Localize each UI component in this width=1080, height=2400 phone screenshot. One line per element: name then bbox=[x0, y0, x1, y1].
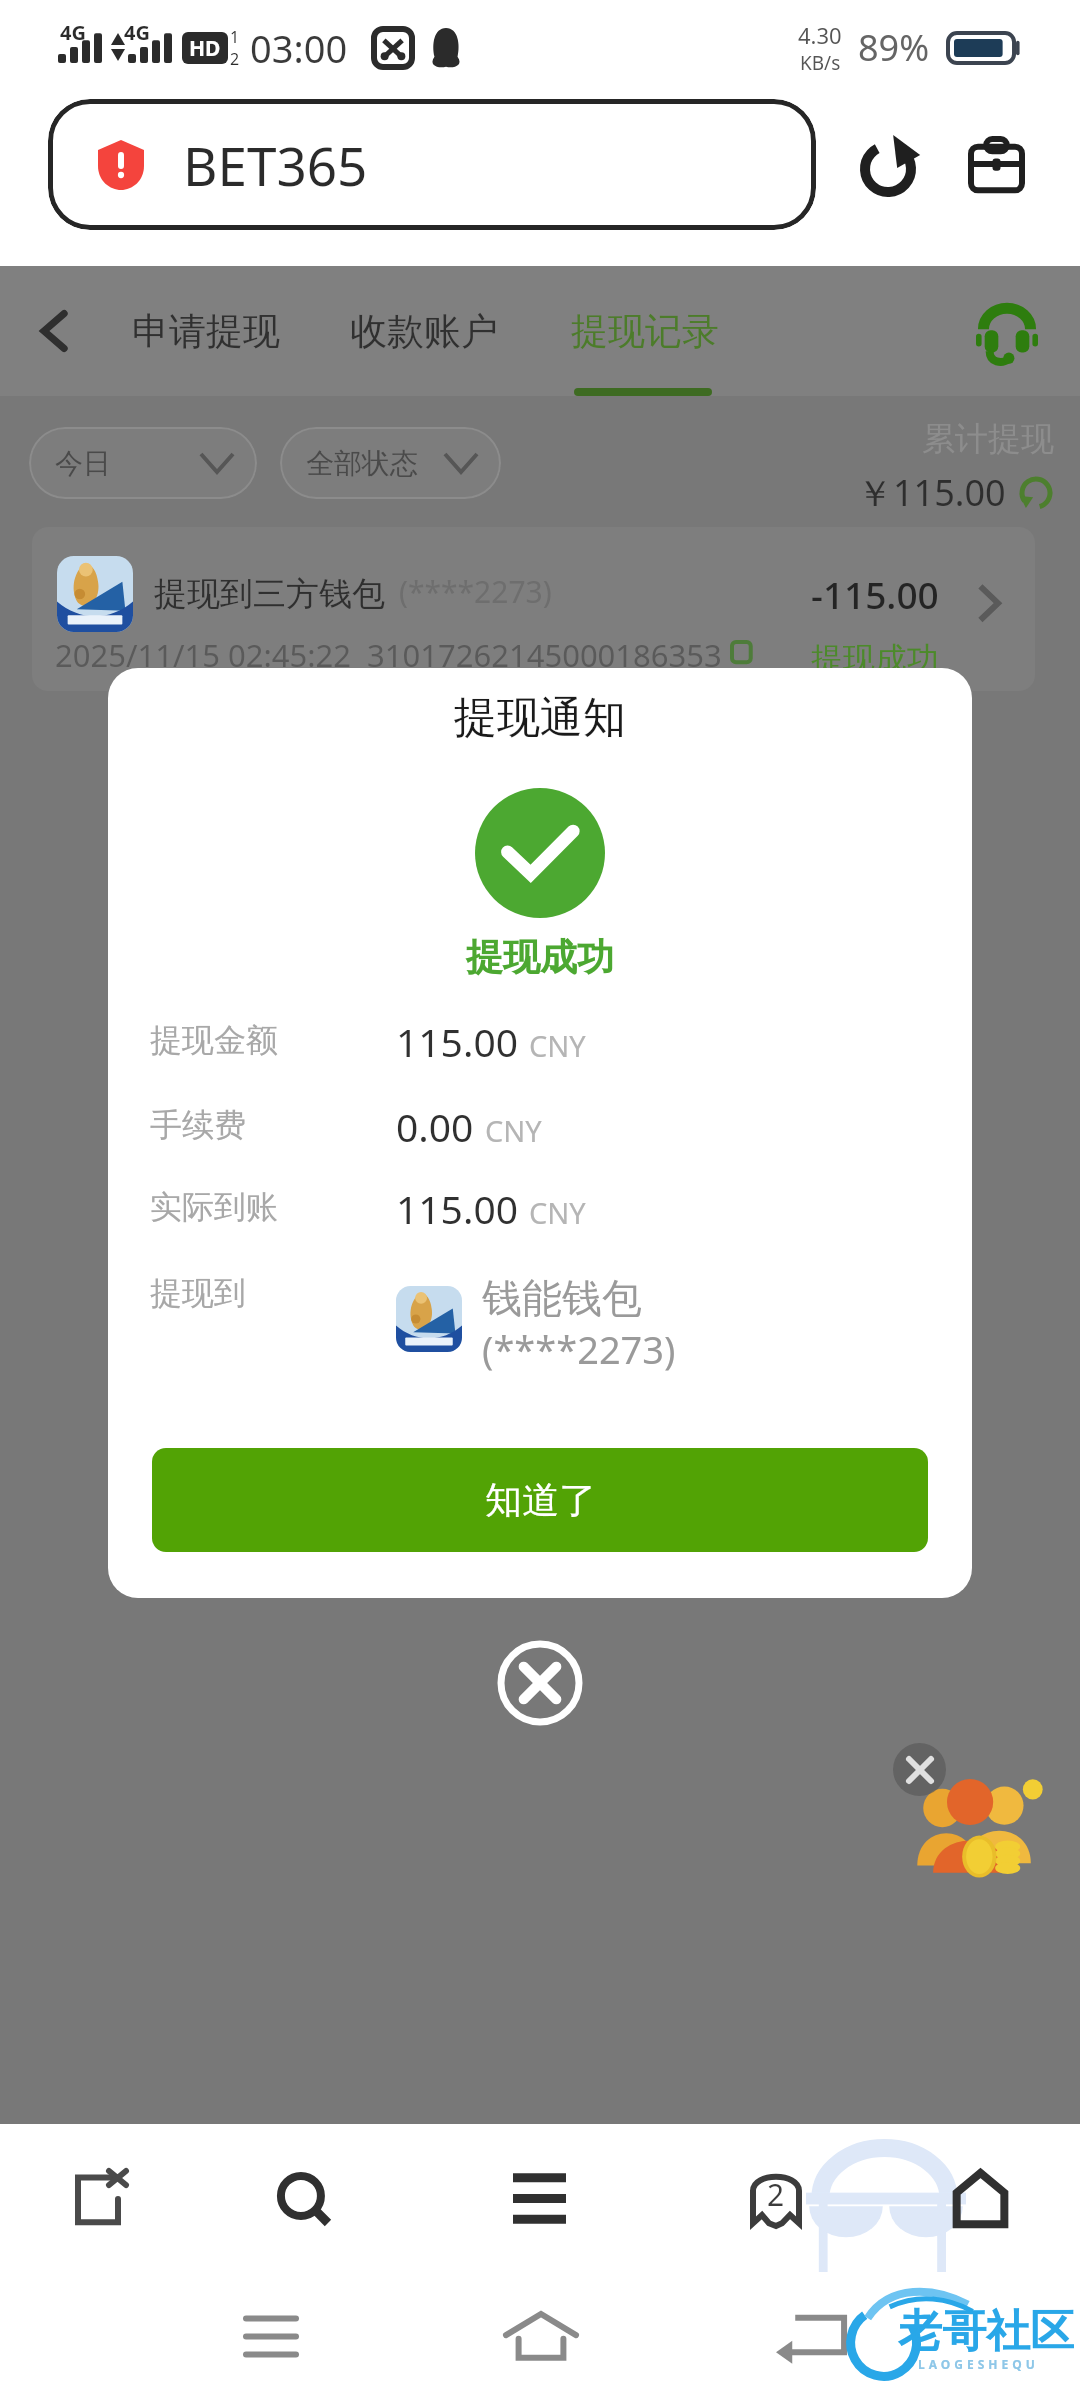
staticText: 89% bbox=[858, 23, 930, 72]
staticText: (****2273) bbox=[482, 1323, 676, 1375]
staticText: 全部状态 bbox=[306, 446, 418, 481]
staticText: 提现成功 bbox=[466, 934, 614, 981]
staticText: 提现成功 bbox=[811, 639, 939, 679]
staticText: 手续费 bbox=[150, 1105, 246, 1145]
staticText: 03:00 bbox=[250, 22, 348, 74]
button[interactable]: 知道了 bbox=[152, 1448, 928, 1552]
staticText: 115.00 bbox=[396, 1015, 518, 1068]
button[interactable]: 全部状态 bbox=[280, 427, 501, 499]
staticText: 今日 bbox=[55, 446, 111, 481]
button[interactable]: Search bbox=[231, 2124, 375, 2272]
staticText: 2025/11/15 02:45:22 31017262145000186353 bbox=[55, 634, 722, 676]
staticText: 提现通知 bbox=[454, 691, 626, 745]
staticText: 收款账户 bbox=[350, 308, 498, 355]
button[interactable]: 今日 bbox=[29, 427, 257, 499]
staticText: 提现记录 bbox=[571, 308, 719, 355]
staticText: 1 bbox=[230, 26, 240, 48]
button[interactable]: New tab bbox=[29, 2124, 173, 2272]
staticText: 提现金额 bbox=[150, 1020, 278, 1060]
staticText: 115.00 bbox=[396, 1182, 518, 1235]
staticText: CNY bbox=[485, 1111, 542, 1150]
staticText: -115.00 bbox=[811, 569, 939, 619]
staticText: HD bbox=[189, 34, 221, 63]
button[interactable]: Close bbox=[486, 1629, 594, 1737]
staticText: 申请提现 bbox=[132, 308, 280, 355]
button[interactable]: 提现到三方钱包 bbox=[32, 527, 1035, 691]
button[interactable]: Home bbox=[468, 2272, 614, 2400]
staticText: 2 bbox=[767, 2174, 785, 2215]
button[interactable]: Menu bbox=[467, 2124, 611, 2272]
staticText: 知道了 bbox=[485, 1477, 596, 1524]
staticText: 老哥社区 bbox=[898, 2304, 1074, 2359]
button[interactable]: Toolbox bbox=[948, 116, 1044, 212]
button[interactable]: Customer support bbox=[958, 286, 1056, 384]
button[interactable]: Home bbox=[908, 2124, 1052, 2272]
staticText: CNY bbox=[529, 1026, 586, 1065]
staticText: LAOGESHEQU bbox=[918, 2356, 1039, 2372]
staticText: CNY bbox=[529, 1193, 586, 1232]
staticText: 实际到账 bbox=[150, 1187, 278, 1227]
staticText: 累计提现 bbox=[922, 418, 1054, 460]
staticText: 提现到 bbox=[150, 1273, 396, 1313]
staticText: ￥115.00 bbox=[857, 468, 1006, 517]
staticText: (****2273) bbox=[399, 571, 552, 612]
staticText: 4.30 bbox=[798, 20, 842, 50]
button[interactable]: 申请提现 bbox=[116, 266, 296, 396]
staticText: 钱能钱包 bbox=[482, 1273, 642, 1323]
button[interactable]: Refresh bbox=[840, 118, 936, 214]
staticText: 4G bbox=[60, 19, 86, 46]
staticText: 4G bbox=[124, 19, 150, 46]
staticText: 2 bbox=[230, 48, 240, 70]
button[interactable]: Recents bbox=[198, 2272, 344, 2400]
staticText: 0.00 bbox=[396, 1100, 474, 1153]
button[interactable]: 提现记录 bbox=[555, 266, 735, 396]
staticText: 提现到三方钱包 bbox=[154, 573, 385, 615]
button[interactable]: Back bbox=[740, 2272, 886, 2400]
button[interactable]: 收款账户 bbox=[334, 266, 514, 396]
button[interactable]: Bookmarks bbox=[704, 2124, 848, 2272]
staticText: BET365 bbox=[183, 129, 368, 201]
button[interactable]: Dismiss promotion bbox=[893, 1743, 946, 1796]
staticText: KB/s bbox=[800, 50, 841, 76]
button[interactable]: BET365 bbox=[48, 99, 816, 230]
button[interactable]: Back bbox=[0, 266, 110, 396]
